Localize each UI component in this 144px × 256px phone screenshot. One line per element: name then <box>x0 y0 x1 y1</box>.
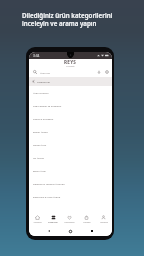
button[interactable]: Hesabım <box>95 213 112 226</box>
staticText: Elektronik & Hobi Ürünü <box>33 195 61 198</box>
staticText: Kahve & Kozmetik <box>33 117 54 120</box>
staticText: Anasayfa <box>33 221 42 224</box>
other: Back <box>48 230 50 232</box>
button[interactable]: Search <box>29 67 112 77</box>
button[interactable]: Anasayfa <box>29 213 45 226</box>
staticText: 3:34 <box>33 54 40 58</box>
staticText: Tel Ürünü <box>33 156 44 159</box>
staticText: inceleyin ve arama yapın <box>22 19 97 27</box>
button[interactable]: Elektronik & Hobi Ürünü <box>29 190 112 203</box>
other: Home <box>69 230 72 233</box>
button[interactable]: Sepetim <box>78 213 95 226</box>
button[interactable]: Back <box>29 77 112 86</box>
staticText: Kategoriler <box>48 221 58 224</box>
staticText: Ürün ara <box>40 71 50 74</box>
staticText: Dilediğiniz ürün kategorilerini <box>22 11 113 19</box>
button[interactable]: Bakım Ürünü <box>29 125 112 138</box>
staticText: Bakım Ürünü <box>33 130 48 133</box>
other: Back <box>32 80 35 83</box>
button[interactable]: Kadın Bakım ve Kozmetik <box>29 99 112 112</box>
staticText: Kategoriler <box>37 80 51 83</box>
staticText: Deterjan & Temizlik Ürünleri <box>33 182 65 185</box>
staticText: Ürün Grupları <box>33 91 49 94</box>
button[interactable]: Tel Ürünü <box>29 151 112 164</box>
button[interactable]: Deterjan & Temizlik Ürünleri <box>29 177 112 190</box>
button[interactable]: Kategoriler <box>45 213 61 226</box>
button[interactable]: Kişisel Ürün <box>29 138 112 151</box>
button[interactable]: Favorilerim <box>61 213 78 226</box>
button[interactable]: Kahve & Kozmetik <box>29 112 112 125</box>
staticText: Kişisel Ürün <box>33 143 47 146</box>
button[interactable]: Ürün Grupları <box>29 86 112 99</box>
staticText: REYS <box>64 59 77 65</box>
staticText: Hesabım <box>100 221 108 224</box>
staticText: Sepetim <box>83 221 91 224</box>
other: Visual search <box>105 70 109 74</box>
other: Search <box>33 70 37 74</box>
staticText: Kadın Bakım ve Kozmetik <box>33 104 62 107</box>
staticText: Favorilerim <box>64 221 75 224</box>
other: Voice search <box>97 70 101 74</box>
staticText: Beyaz Ürün <box>33 169 46 172</box>
button[interactable]: Beyaz Ürün <box>29 164 112 177</box>
staticText: ALIŞVERİŞ <box>66 65 75 67</box>
